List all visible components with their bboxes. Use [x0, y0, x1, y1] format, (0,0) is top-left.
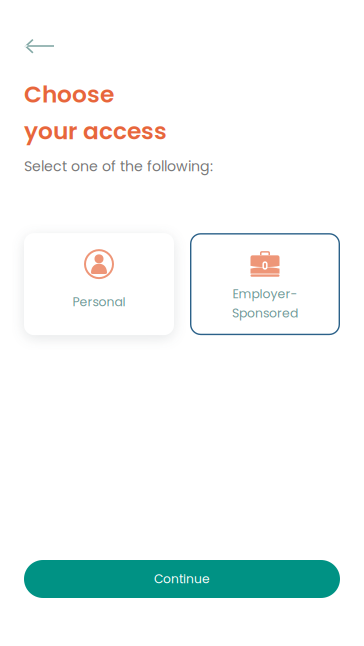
- button[interactable]: Employer-: [190, 233, 340, 335]
- button[interactable]: Continue: [24, 560, 340, 598]
- staticText: Choose: [24, 78, 114, 111]
- staticText: Personal: [72, 293, 125, 310]
- staticText: Sponsored: [232, 304, 298, 322]
- button[interactable]: Back: [24, 39, 55, 54]
- staticText: Employer-: [232, 285, 297, 302]
- button[interactable]: Personal: [24, 233, 174, 335]
- staticText: Continue: [154, 570, 210, 588]
- staticText: Select one of the following:: [24, 156, 213, 176]
- staticText: your access: [24, 115, 167, 147]
